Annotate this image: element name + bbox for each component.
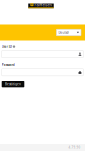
staticText: raiffeisen bbox=[34, 2, 51, 7]
staticText: 4.79.90 bbox=[68, 146, 80, 149]
button[interactable]: Bestätigen bbox=[2, 81, 24, 87]
staticText: Deutsch bbox=[58, 30, 69, 35]
staticText: Password bbox=[2, 63, 15, 67]
button[interactable]: Password field bbox=[2, 69, 83, 76]
button[interactable]: User ID field bbox=[2, 51, 83, 58]
button[interactable]: Deutsch bbox=[56, 29, 81, 36]
staticText: Bestätigen bbox=[5, 82, 21, 86]
staticText: User ID bbox=[2, 44, 12, 49]
button[interactable]: Raiffeisen home bbox=[28, 3, 54, 7]
